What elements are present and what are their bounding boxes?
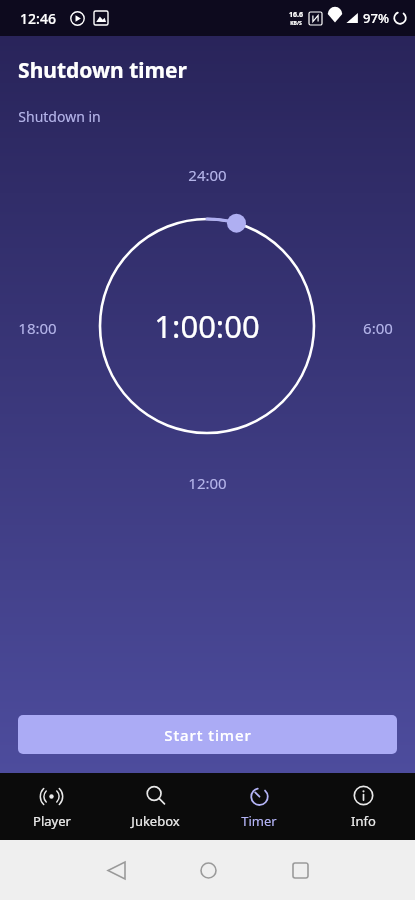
staticText: Player	[33, 812, 71, 830]
staticText: KB/S	[290, 20, 302, 27]
staticText: Timer	[241, 812, 277, 830]
staticText: Jukebox	[131, 812, 180, 830]
button[interactable]: Jukebox	[103, 773, 207, 840]
staticText: 97%	[363, 9, 389, 27]
staticText: Shutdown in	[18, 107, 101, 126]
staticText: 18:00	[18, 318, 57, 338]
staticText: Info	[351, 812, 376, 830]
staticText: Start timer	[164, 725, 252, 745]
staticText: Shutdown timer	[18, 56, 187, 85]
button[interactable]: Back	[92, 846, 140, 894]
button[interactable]: Home	[184, 846, 232, 894]
staticText: 6:00	[363, 318, 393, 338]
button[interactable]: Timer	[207, 773, 311, 840]
staticText: 12:46	[20, 9, 56, 28]
staticText: 16.6	[289, 10, 303, 20]
staticText: 1:00:00	[154, 305, 260, 347]
button[interactable]: Info	[311, 773, 415, 840]
staticText: 24:00	[188, 165, 227, 185]
button[interactable]: Player	[0, 773, 103, 840]
staticText: 12:00	[188, 473, 227, 493]
button[interactable]: Timer duration dial	[88, 207, 326, 445]
button[interactable]: Start timer	[18, 715, 397, 754]
button[interactable]: Recent apps	[276, 846, 324, 894]
